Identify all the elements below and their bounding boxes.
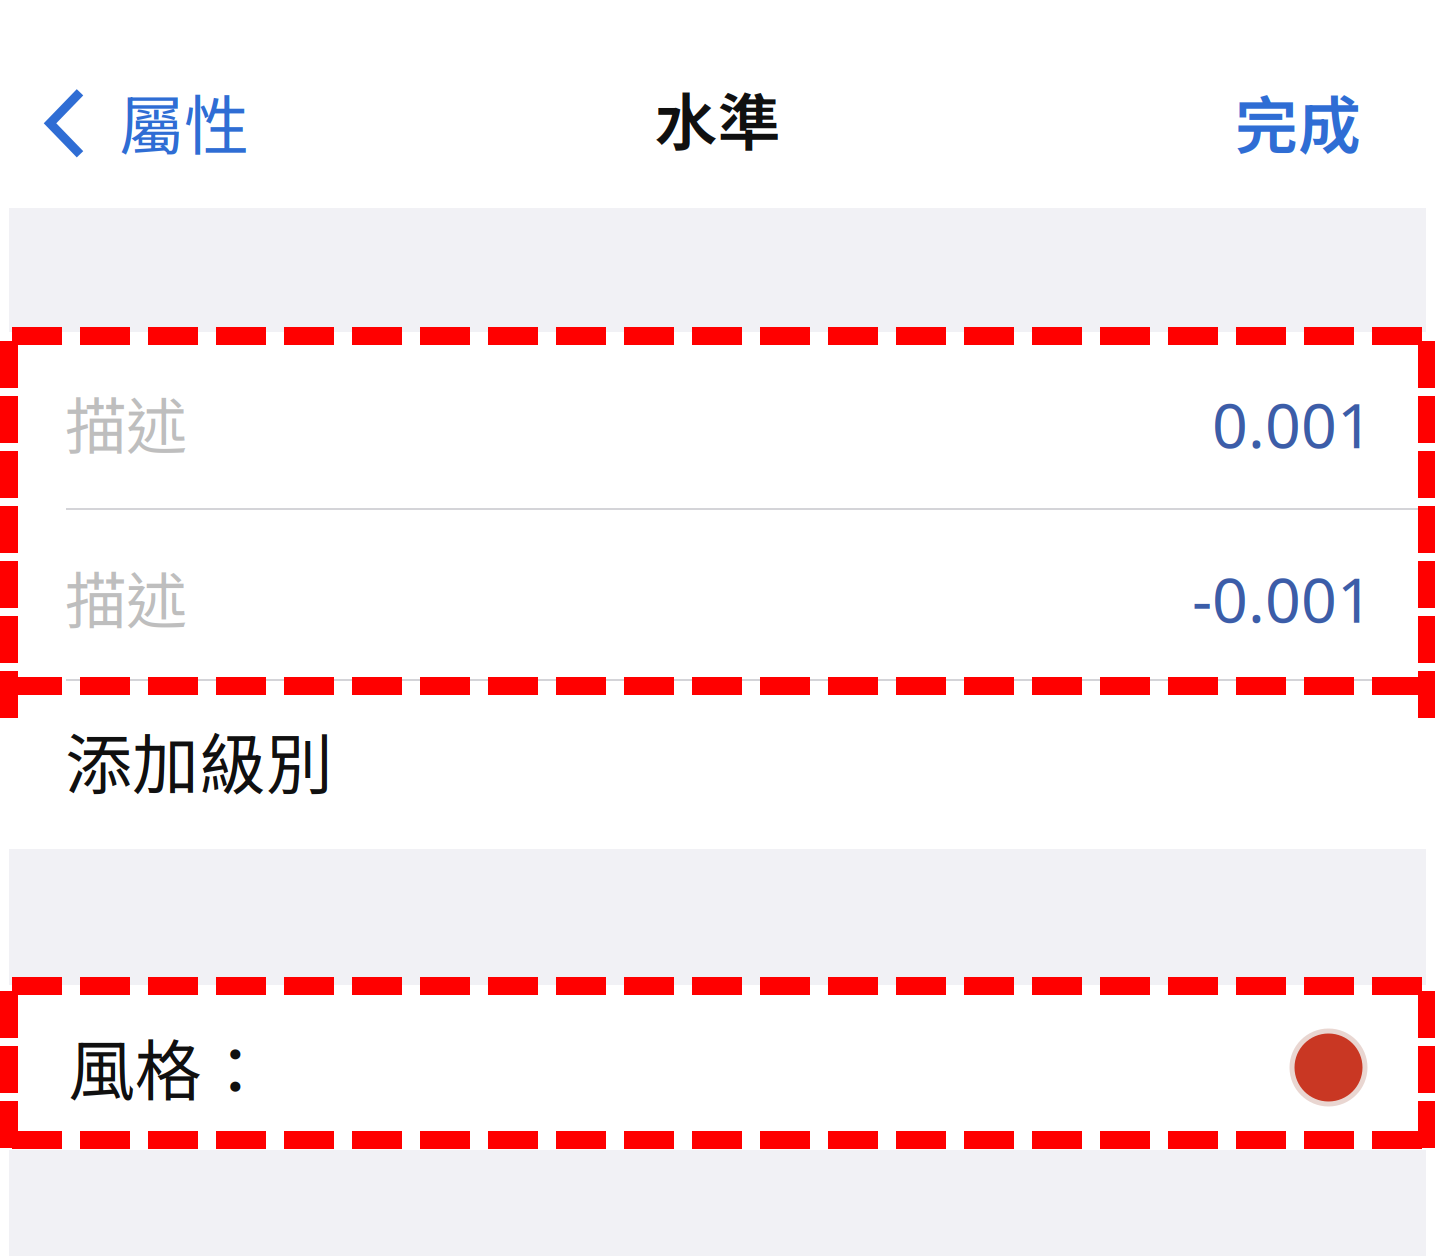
staticText: 完成 <box>1235 76 1361 167</box>
button[interactable]: 描述 <box>9 332 1426 508</box>
button[interactable]: 描述 <box>9 510 1426 679</box>
button[interactable]: 完成 <box>1219 62 1377 181</box>
staticText: -0.001 <box>1192 557 1373 640</box>
staticText: 描述 <box>65 552 187 641</box>
button[interactable]: 添加級別 <box>9 681 1426 849</box>
button[interactable]: 風格： <box>9 985 1426 1150</box>
button[interactable]: 屬性 <box>9 62 249 185</box>
staticText: 屬性 <box>119 74 249 169</box>
staticText: 風格： <box>68 1018 269 1115</box>
staticText: 描述 <box>65 378 187 466</box>
staticText: 水準 <box>654 73 780 164</box>
staticText: 0.001 <box>1212 382 1373 466</box>
staticText: 添加級別 <box>65 712 333 808</box>
